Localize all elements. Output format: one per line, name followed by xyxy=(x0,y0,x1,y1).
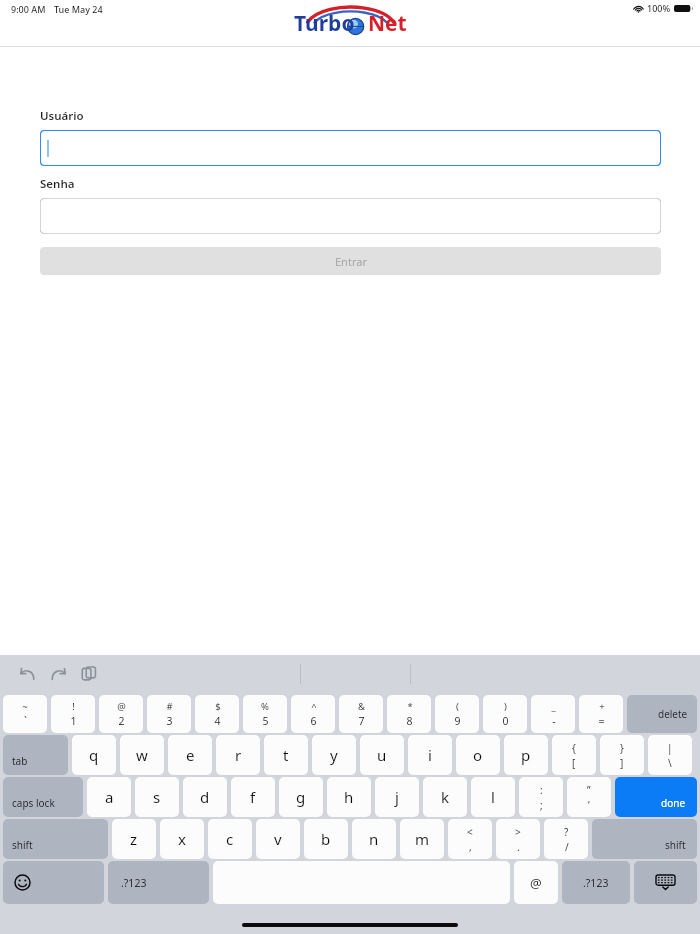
button[interactable]: m xyxy=(400,819,444,859)
button[interactable]: tab xyxy=(3,735,68,775)
button[interactable]: ~ xyxy=(3,695,47,733)
staticText: 2 xyxy=(118,714,125,728)
button[interactable]: o xyxy=(456,735,500,775)
staticText: & xyxy=(358,700,365,713)
button[interactable]: u xyxy=(360,735,404,775)
staticText: { xyxy=(572,741,576,755)
staticText: } xyxy=(620,741,624,755)
button[interactable]: q xyxy=(72,735,116,775)
button[interactable]: & xyxy=(339,695,383,733)
button[interactable]: ! xyxy=(51,695,95,733)
button[interactable]: y xyxy=(312,735,356,775)
button[interactable]: f xyxy=(231,777,275,817)
button[interactable]: Hide keyboard xyxy=(634,861,697,904)
staticText: 100% xyxy=(647,2,671,14)
staticText: p xyxy=(521,745,531,765)
button[interactable]: i xyxy=(408,735,452,775)
button[interactable]: # xyxy=(147,695,191,733)
button[interactable]: ) xyxy=(483,695,527,733)
button[interactable]: @ xyxy=(514,861,558,904)
button[interactable]: } xyxy=(600,735,644,775)
button[interactable]: Undo xyxy=(14,661,40,687)
button[interactable]: Paste xyxy=(76,661,102,687)
staticText: i xyxy=(428,745,432,765)
button[interactable]: > xyxy=(496,819,540,859)
staticText: \ xyxy=(668,756,672,770)
button[interactable]: w xyxy=(120,735,164,775)
button[interactable]: delete xyxy=(627,695,697,733)
button[interactable]: % xyxy=(243,695,287,733)
button[interactable]: .?123 xyxy=(562,861,630,904)
button[interactable]: < xyxy=(448,819,492,859)
staticText: caps lock xyxy=(12,796,55,810)
button[interactable]: _ xyxy=(531,695,575,733)
button[interactable]: ” xyxy=(567,777,611,817)
button[interactable]: $ xyxy=(195,695,239,733)
staticText: = xyxy=(598,714,605,728)
staticText: s xyxy=(153,787,161,807)
button[interactable]: @ xyxy=(99,695,143,733)
button[interactable]: z xyxy=(112,819,156,859)
button[interactable]: Emoji xyxy=(3,861,104,904)
button[interactable]: v xyxy=(256,819,300,859)
button[interactable]: e xyxy=(168,735,212,775)
staticText: d xyxy=(200,787,210,807)
button[interactable]: Redo xyxy=(45,661,71,687)
button[interactable]: d xyxy=(183,777,227,817)
staticText: y xyxy=(330,745,338,765)
button[interactable]: { xyxy=(552,735,596,775)
button[interactable]: s xyxy=(135,777,179,817)
button[interactable]: ? xyxy=(544,819,588,859)
button[interactable]: + xyxy=(579,695,623,733)
button[interactable]: p xyxy=(504,735,548,775)
staticText: ” xyxy=(587,783,591,797)
button[interactable]: shift xyxy=(3,819,108,859)
staticText: 3 xyxy=(166,714,173,728)
button[interactable]: b xyxy=(304,819,348,859)
staticText: 8 xyxy=(406,714,413,728)
button[interactable]: j xyxy=(375,777,419,817)
button[interactable]: shift xyxy=(592,819,697,859)
staticText: ’ xyxy=(588,798,590,812)
button[interactable]: n xyxy=(352,819,396,859)
staticText: Tue May 24 xyxy=(54,3,103,15)
button[interactable]: caps lock xyxy=(3,777,83,817)
button[interactable]: Entrar xyxy=(40,247,661,275)
button[interactable]: h xyxy=(327,777,371,817)
staticText: delete xyxy=(658,707,688,721)
staticText: l xyxy=(491,787,495,807)
button[interactable]: k xyxy=(423,777,467,817)
staticText: ` xyxy=(24,714,27,728)
staticText: z xyxy=(130,829,138,849)
staticText: w xyxy=(136,745,148,765)
button[interactable]: ^ xyxy=(291,695,335,733)
button[interactable]: a xyxy=(87,777,131,817)
button[interactable]: .?123 xyxy=(108,861,209,904)
button[interactable]: done xyxy=(615,777,697,817)
staticText: Usuário xyxy=(40,108,84,124)
button[interactable]: : xyxy=(519,777,563,817)
staticText: Senha xyxy=(40,176,75,192)
button[interactable]: l xyxy=(471,777,515,817)
staticText: b xyxy=(321,829,331,849)
staticText: q xyxy=(89,745,99,765)
staticText: g xyxy=(296,787,306,807)
button[interactable]: g xyxy=(279,777,323,817)
staticText: shift xyxy=(665,838,686,852)
button[interactable]: x xyxy=(160,819,204,859)
button[interactable]: t xyxy=(264,735,308,775)
staticText: r xyxy=(235,745,242,765)
staticText: 6 xyxy=(310,714,317,728)
staticText: / xyxy=(565,840,569,854)
button[interactable]: r xyxy=(216,735,260,775)
staticText: : xyxy=(540,783,543,797)
staticText: @ xyxy=(117,700,126,713)
button[interactable]: * xyxy=(387,695,431,733)
staticText: n xyxy=(369,829,379,849)
button[interactable]: c xyxy=(208,819,252,859)
button[interactable] xyxy=(40,198,661,234)
button[interactable]: | xyxy=(648,735,692,775)
button[interactable] xyxy=(40,130,661,166)
button[interactable]: ( xyxy=(435,695,479,733)
